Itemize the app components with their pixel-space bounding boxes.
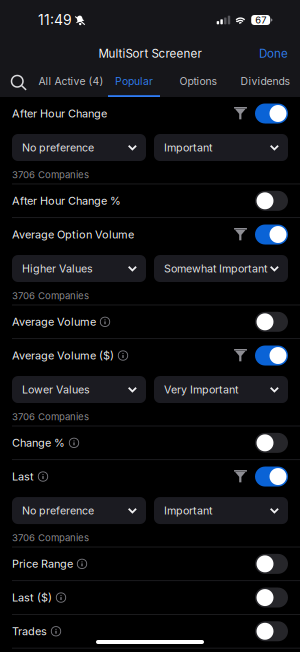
button[interactable]: No preference bbox=[12, 134, 146, 161]
staticText: Dividends bbox=[240, 75, 289, 87]
staticText: Average Option Volume bbox=[12, 228, 134, 241]
staticText: Important bbox=[164, 141, 212, 154]
staticText: Change % bbox=[12, 436, 65, 449]
staticText: Options bbox=[179, 75, 216, 87]
button[interactable]: Trades bbox=[255, 621, 288, 641]
button[interactable]: Filter Average Option Volume bbox=[234, 228, 247, 241]
staticText: After Hour Change bbox=[12, 107, 107, 120]
staticText: 3706 Companies bbox=[12, 290, 89, 302]
button[interactable]: Popular bbox=[108, 67, 160, 97]
staticText: Popular bbox=[115, 75, 153, 87]
staticText: No preference bbox=[22, 141, 94, 154]
staticText: Done bbox=[259, 46, 288, 60]
staticText: Higher Values bbox=[22, 262, 93, 275]
staticText: Very Important bbox=[164, 383, 238, 396]
staticText: No preference bbox=[22, 504, 94, 517]
staticText: MultiSort Screener bbox=[98, 46, 201, 60]
button[interactable]: Last ($) bbox=[255, 588, 288, 608]
staticText: 3706 Companies bbox=[12, 169, 89, 181]
button[interactable]: Average Option Volume bbox=[255, 224, 288, 244]
button[interactable]: All Active (4) bbox=[34, 67, 108, 97]
staticText: 11:49 bbox=[38, 11, 72, 28]
staticText: 67 bbox=[255, 14, 266, 26]
button[interactable]: After Hour Change bbox=[255, 103, 288, 123]
button[interactable]: Average Volume bbox=[255, 312, 288, 332]
button[interactable]: Lower Values bbox=[12, 376, 146, 403]
staticText: Trades bbox=[12, 625, 47, 638]
staticText: Lower Values bbox=[22, 383, 90, 396]
staticText: Somewhat Important bbox=[164, 262, 267, 275]
staticText: 3706 Companies bbox=[12, 532, 89, 544]
staticText: Average Volume bbox=[12, 315, 96, 328]
button[interactable]: Important bbox=[154, 497, 288, 524]
staticText: Last bbox=[12, 470, 34, 483]
button[interactable]: Important bbox=[154, 134, 288, 161]
button[interactable]: Filter Last bbox=[234, 470, 247, 483]
button[interactable]: Filter After Hour Change bbox=[234, 107, 247, 120]
staticText: After Hour Change % bbox=[12, 194, 121, 207]
button[interactable]: Filter Average Volume ($) bbox=[234, 349, 247, 362]
button[interactable]: Search bbox=[0, 67, 34, 97]
button[interactable]: Somewhat Important bbox=[154, 255, 288, 282]
staticText: 3706 Companies bbox=[12, 411, 89, 423]
button[interactable]: Change % bbox=[255, 433, 288, 453]
staticText: Last ($) bbox=[12, 591, 52, 604]
button[interactable]: After Hour Change % bbox=[255, 191, 288, 211]
staticText: Price Range bbox=[12, 557, 73, 570]
button[interactable]: Dividends bbox=[236, 67, 294, 97]
button[interactable]: Price Range bbox=[255, 554, 288, 574]
button[interactable]: No preference bbox=[12, 497, 146, 524]
staticText: Average Volume ($) bbox=[12, 349, 114, 362]
button[interactable]: Last bbox=[255, 466, 288, 486]
button[interactable]: Options bbox=[160, 67, 236, 97]
button[interactable]: Average Volume ($) bbox=[255, 345, 288, 365]
button[interactable]: Very Important bbox=[154, 376, 288, 403]
staticText: Important bbox=[164, 504, 212, 517]
button[interactable]: Higher Values bbox=[12, 255, 146, 282]
button[interactable]: Done bbox=[247, 40, 300, 66]
staticText: All Active (4) bbox=[38, 75, 103, 87]
